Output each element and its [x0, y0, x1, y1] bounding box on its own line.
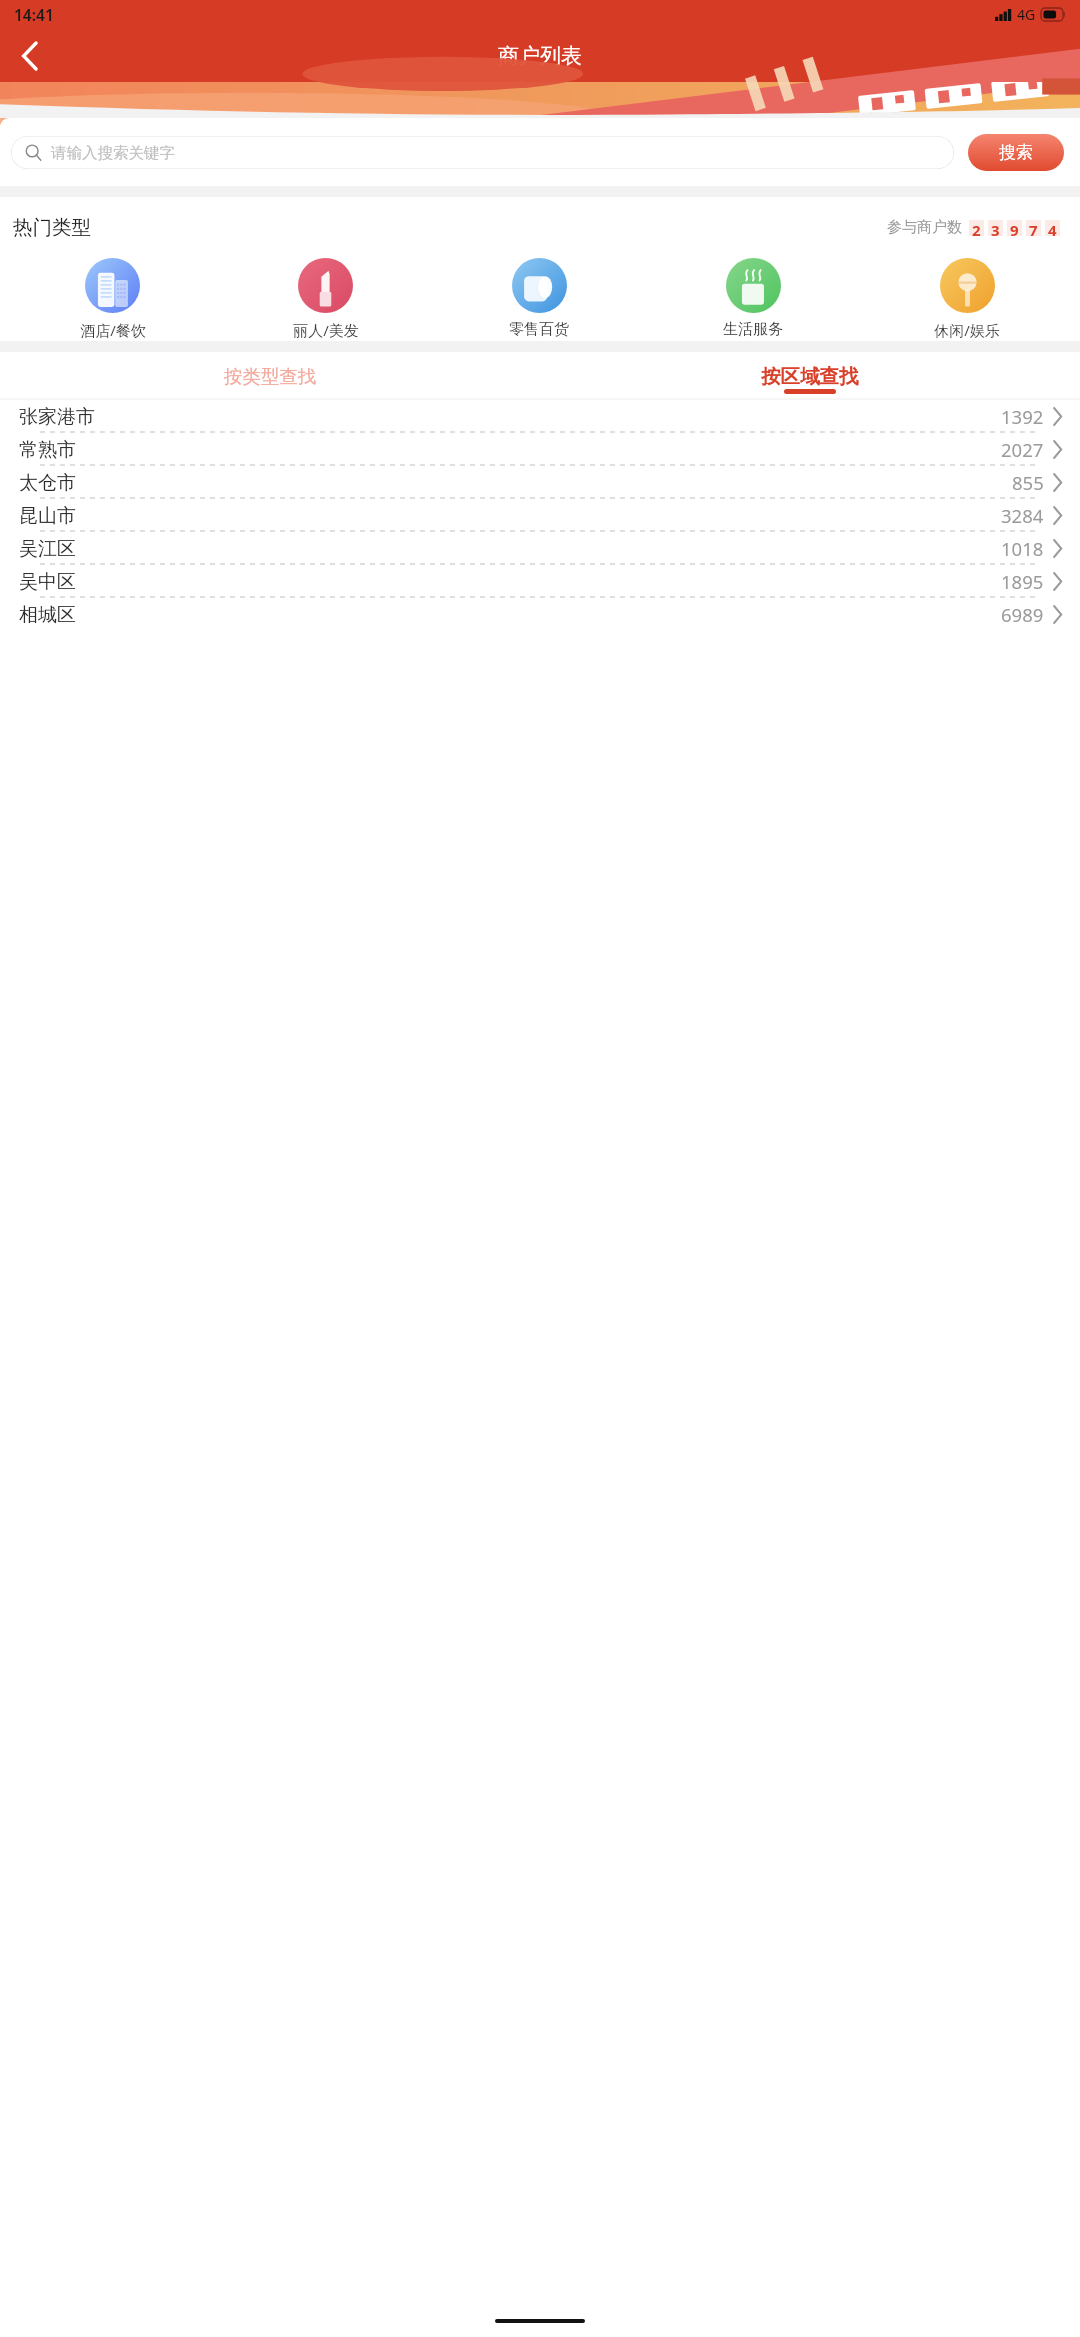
staticText: 休闲/娱乐 — [934, 320, 1000, 339]
button[interactable]: 张家港市 — [0, 400, 1080, 433]
button[interactable]: 常熟市 — [0, 433, 1080, 466]
staticText: 14:41 — [14, 4, 54, 25]
staticText: 请输入搜索关键字 — [51, 143, 175, 163]
staticText: 搜索 — [999, 142, 1033, 163]
button[interactable]: 太仓市 — [0, 466, 1080, 499]
staticText: 生活服务 — [723, 320, 783, 339]
staticText: 1392 — [1001, 404, 1044, 429]
button[interactable]: 酒店/餐饮 — [6, 256, 219, 341]
button[interactable]: 请输入搜索关键字 — [11, 136, 954, 169]
staticText: 按区域查找 — [761, 364, 859, 389]
staticText: 热门类型 — [13, 215, 91, 240]
staticText: 3284 — [1001, 503, 1044, 528]
button[interactable]: Back — [6, 32, 54, 80]
staticText: 按类型查找 — [224, 365, 317, 388]
staticText: 3 — [991, 220, 1000, 236]
button[interactable]: 吴江区 — [0, 532, 1080, 565]
staticText: 1895 — [1001, 569, 1044, 594]
staticText: 商户列表 — [498, 43, 582, 69]
staticText: 855 — [1012, 470, 1044, 495]
staticText: 6989 — [1001, 602, 1044, 627]
staticText: 2027 — [1001, 437, 1044, 462]
button[interactable]: 搜索 — [968, 134, 1064, 171]
staticText: 吴中区 — [19, 570, 76, 594]
staticText: 相城区 — [19, 603, 76, 627]
button[interactable]: 生活服务 — [646, 256, 860, 341]
button[interactable]: 丽人/美发 — [219, 256, 432, 341]
button[interactable]: 休闲/娱乐 — [860, 256, 1074, 341]
staticText: 零售百货 — [509, 320, 569, 339]
staticText: 昆山市 — [19, 504, 76, 528]
staticText: 参与商户数 — [887, 218, 962, 237]
staticText: 吴江区 — [19, 537, 76, 561]
staticText: 酒店/餐饮 — [80, 320, 146, 339]
staticText: 2 — [972, 220, 981, 236]
button[interactable]: 相城区 — [0, 598, 1080, 631]
staticText: 4G — [1017, 5, 1036, 24]
button[interactable]: 零售百货 — [432, 256, 646, 341]
button[interactable]: 吴中区 — [0, 565, 1080, 598]
staticText: 太仓市 — [19, 471, 76, 495]
staticText: 4 — [1048, 220, 1057, 236]
staticText: 1018 — [1001, 536, 1044, 561]
button[interactable]: 按类型查找 — [0, 352, 540, 400]
staticText: 9 — [1010, 220, 1019, 236]
staticText: 7 — [1029, 220, 1038, 236]
staticText: 张家港市 — [19, 405, 95, 429]
staticText: 常熟市 — [19, 438, 76, 462]
staticText: 丽人/美发 — [293, 320, 359, 339]
button[interactable]: 昆山市 — [0, 499, 1080, 532]
button[interactable]: 按区域查找 — [540, 352, 1080, 400]
